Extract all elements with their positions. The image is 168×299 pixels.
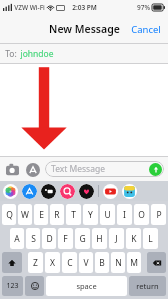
button[interactable]: T	[66, 204, 81, 225]
button[interactable]: F	[58, 228, 73, 249]
staticText: D	[46, 233, 53, 245]
button[interactable]: X	[45, 252, 60, 273]
button[interactable]: space	[46, 276, 127, 296]
button[interactable]: V	[79, 252, 93, 273]
button[interactable]: K	[126, 228, 141, 249]
staticText: To:	[5, 48, 17, 60]
button[interactable]: Apple Pay	[41, 184, 56, 199]
staticText: C	[67, 257, 73, 269]
button[interactable]: U	[100, 204, 115, 225]
staticText: S	[31, 233, 36, 245]
staticText: A	[14, 233, 20, 245]
button[interactable]: Photos	[3, 184, 18, 199]
button[interactable]: N	[111, 252, 125, 273]
button[interactable]: W	[18, 204, 32, 225]
staticText: 97%	[137, 3, 150, 12]
button[interactable]: J	[109, 228, 124, 249]
button[interactable]: M	[127, 252, 141, 273]
button[interactable]: L	[143, 228, 158, 249]
button[interactable]: Backspace	[147, 252, 166, 273]
staticText: Q	[6, 209, 13, 221]
staticText: X	[50, 257, 55, 269]
button[interactable]: Music	[60, 184, 75, 199]
staticText: B	[99, 257, 105, 269]
staticText: V	[83, 257, 89, 269]
button[interactable]: Y	[83, 204, 98, 225]
staticText: M	[130, 257, 138, 269]
button[interactable]: To:	[0, 44, 168, 63]
button[interactable]: return	[129, 276, 166, 296]
button[interactable]: G	[75, 228, 90, 249]
button[interactable]: E	[34, 204, 48, 225]
button[interactable]: O	[134, 204, 149, 225]
button[interactable]: A	[10, 228, 24, 249]
button[interactable]: YouTube	[103, 184, 118, 199]
button[interactable]: More	[122, 184, 137, 199]
staticText: return	[136, 281, 159, 291]
button[interactable]: App Store	[24, 161, 41, 178]
staticText: Y	[88, 209, 93, 221]
staticText: G	[79, 233, 86, 245]
staticText: Text Message	[51, 163, 105, 175]
button[interactable]: Camera	[4, 161, 21, 178]
staticText: N	[115, 257, 122, 269]
staticText: VZW Wi-Fi	[14, 3, 45, 12]
button[interactable]: R	[50, 204, 64, 225]
button[interactable]: Z	[28, 252, 43, 273]
button[interactable]: B	[95, 252, 109, 273]
staticText: I	[123, 209, 126, 221]
button[interactable]: Emoji	[25, 276, 44, 296]
button[interactable]: Shift	[2, 252, 22, 273]
button[interactable]: Q	[2, 204, 16, 225]
staticText: H	[96, 233, 103, 245]
staticText: E	[39, 209, 44, 221]
button[interactable]: Cancel	[124, 18, 168, 41]
button[interactable]: Health	[79, 184, 94, 199]
staticText: F	[63, 233, 68, 245]
button[interactable]: S	[26, 228, 40, 249]
button[interactable]: 123	[2, 276, 23, 296]
staticText: U	[104, 209, 111, 221]
staticText: W	[21, 209, 29, 221]
staticText: 123	[6, 281, 19, 291]
staticText: New Message	[49, 22, 120, 36]
button[interactable]: Text Message	[45, 161, 164, 177]
button[interactable]: C	[62, 252, 77, 273]
button[interactable]: P	[151, 204, 166, 225]
staticText: 2:03 PM	[72, 3, 97, 12]
staticText: J	[115, 233, 118, 245]
staticText: Z	[33, 257, 38, 269]
staticText: T	[71, 209, 76, 221]
staticText: O	[138, 209, 145, 221]
staticText: johndoe	[20, 48, 54, 60]
staticText: R	[54, 209, 60, 221]
button[interactable]: H	[92, 228, 107, 249]
staticText: K	[131, 233, 137, 245]
button[interactable]: App Store	[22, 184, 37, 199]
staticText: L	[148, 233, 153, 245]
staticText: P	[156, 209, 162, 221]
button[interactable]: D	[42, 228, 56, 249]
button[interactable]: Send	[149, 163, 162, 176]
staticText: Cancel	[131, 23, 161, 36]
button[interactable]: I	[117, 204, 132, 225]
staticText: space	[76, 281, 97, 291]
